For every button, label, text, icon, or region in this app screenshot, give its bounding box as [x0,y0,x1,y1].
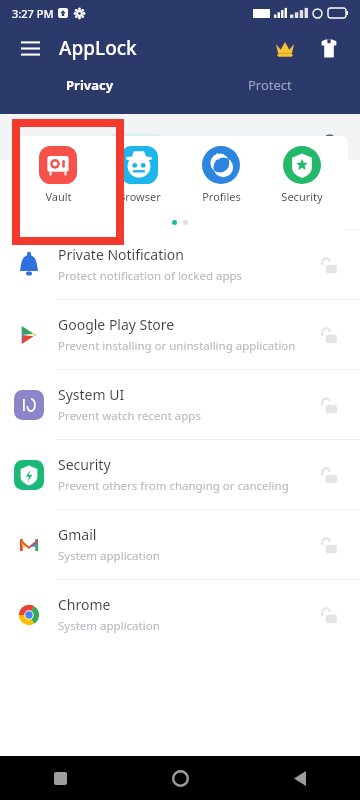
button[interactable]: Recent apps [0,756,120,800]
staticText: Privacy [66,76,114,94]
button[interactable]: Lock Google Play Store [314,319,346,351]
staticText: Gmail [58,525,97,544]
staticText: Protect notification of locked apps [58,268,243,284]
button[interactable]: Home [120,756,240,800]
button[interactable]: Browser [104,146,174,204]
button[interactable]: Lock Chrome [314,599,346,631]
staticText: Google Play Store [58,315,175,334]
staticText: Settings [58,175,112,194]
staticText: Browser [118,189,161,204]
button[interactable]: System UI [0,370,360,439]
button[interactable]: Privacy [0,70,180,100]
button[interactable]: Back [240,756,360,800]
button[interactable]: Lock Settings [314,179,346,211]
staticText: Security [58,455,111,474]
staticText: Security [281,189,323,204]
staticText: AppLock [59,35,137,61]
button[interactable]: Lock Security [314,459,346,491]
button[interactable]: Security [0,440,360,509]
staticText: Prevent others from changing or cancelin… [58,478,289,494]
staticText: Recommended [14,134,103,151]
button[interactable]: Premium [268,31,302,65]
button[interactable]: Profiles [186,146,256,204]
button[interactable]: Lock System UI [314,389,346,421]
staticText: System UI [58,385,125,404]
button[interactable]: Lock Private Notification [314,249,346,281]
staticText: System application [58,548,160,564]
button[interactable]: Chrome [0,580,360,649]
button[interactable]: Search [316,127,346,157]
staticText: Profiles [202,189,241,204]
staticText: Prevent uninstalling or force-stop appli… [58,198,301,214]
staticText: System application [58,618,160,634]
button[interactable]: Lock Gmail [314,529,346,561]
staticText: Chrome [58,595,111,614]
button[interactable]: Vault [23,146,93,204]
button[interactable]: Themes [312,31,346,65]
button[interactable]: Open menu [14,32,46,64]
staticText: Private Notification [58,245,184,264]
staticText: Protect [248,76,292,94]
button[interactable]: Settings [0,160,360,229]
staticText: 3:27 PM [12,6,54,21]
button[interactable]: Private Notification [0,230,360,299]
button[interactable]: Security [267,146,337,204]
button[interactable]: Protect [180,70,360,100]
staticText: > 80% [128,136,155,149]
button[interactable]: Gmail [0,510,360,579]
button[interactable]: Google Play Store [0,300,360,369]
staticText: Prevent watch recent apps [58,408,201,424]
staticText: Prevent installing or uninstalling appli… [58,338,296,354]
staticText: Vault [45,189,72,204]
